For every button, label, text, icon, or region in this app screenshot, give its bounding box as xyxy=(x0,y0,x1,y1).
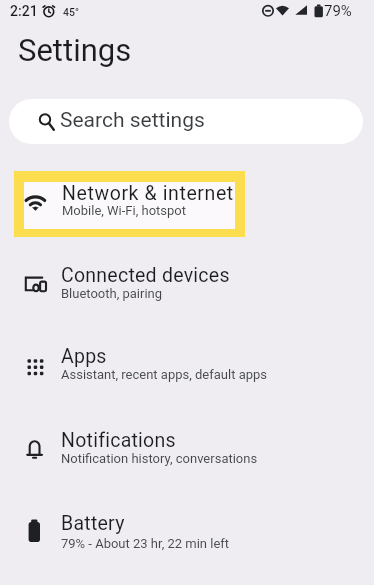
button[interactable]: Apps xyxy=(0,325,374,405)
button[interactable]: Network & internet xyxy=(24,182,235,229)
staticText: Bluetooth, pairing xyxy=(61,286,163,301)
staticText: Apps xyxy=(61,345,107,368)
staticText: Network & internet xyxy=(62,182,234,205)
staticText: 79% xyxy=(324,2,352,20)
staticText: 79% - About 23 hr, 22 min left xyxy=(61,536,230,551)
staticText: Assistant, recent apps, default apps xyxy=(61,367,268,382)
staticText: Settings xyxy=(18,32,132,68)
staticText: Search settings xyxy=(60,108,205,133)
staticText: Notifications xyxy=(61,429,176,452)
staticText: Mobile, Wi-Fi, hotspot xyxy=(62,203,186,218)
button[interactable]: Search settings xyxy=(9,99,363,144)
staticText: Battery xyxy=(61,512,125,535)
staticText: Notification history, conversations xyxy=(61,451,258,466)
button[interactable]: Notifications xyxy=(0,409,374,489)
staticText: 2:21 xyxy=(10,3,38,19)
staticText: 45° xyxy=(63,6,79,18)
button[interactable]: Connected devices xyxy=(0,244,374,324)
button[interactable]: Battery xyxy=(0,492,374,572)
staticText: Connected devices xyxy=(61,264,230,287)
